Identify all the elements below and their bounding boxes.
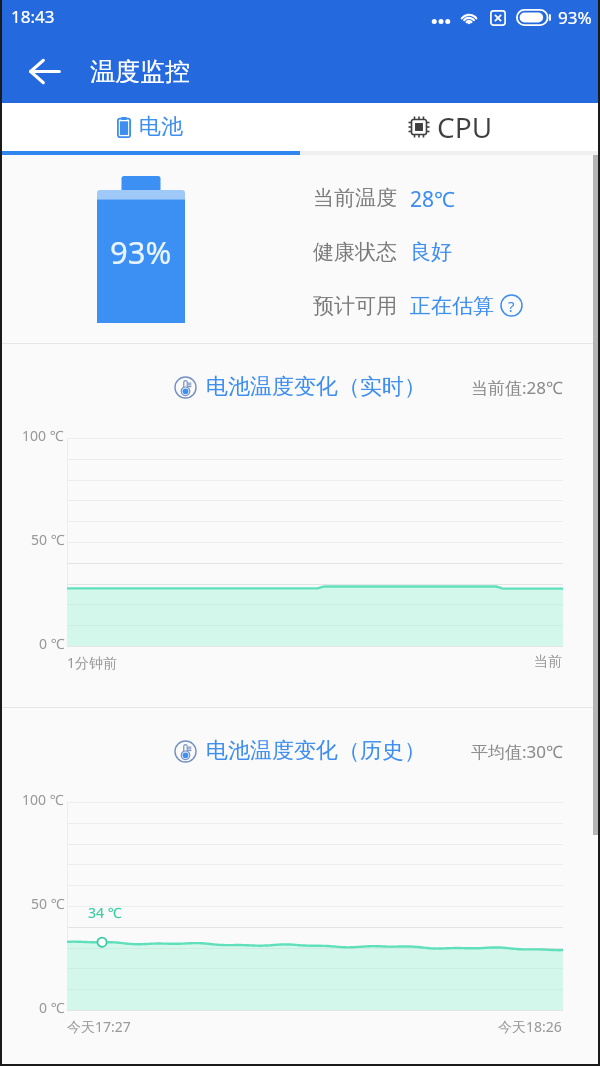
staticText: 1分钟前: [67, 653, 118, 672]
staticText: 预计可用: [313, 293, 397, 317]
staticText: 温度监控: [90, 56, 190, 87]
staticText: 今天17:27: [67, 1017, 131, 1036]
button[interactable]: Back: [0, 40, 90, 103]
staticText: 100 ℃: [22, 426, 64, 445]
button[interactable]: CPU: [300, 103, 600, 151]
staticText: 34 ℃: [88, 903, 122, 922]
staticText: 50 ℃: [31, 530, 65, 549]
staticText: 100 ℃: [22, 790, 64, 809]
staticText: ?: [508, 296, 515, 316]
staticText: 正在估算: [410, 293, 494, 317]
staticText: 0 ℃: [39, 998, 65, 1017]
staticText: 50 ℃: [31, 894, 65, 913]
staticText: 当前温度: [313, 185, 397, 209]
staticText: 93%: [110, 231, 172, 273]
staticText: 良好: [410, 239, 452, 263]
staticText: CPU: [437, 108, 493, 146]
staticText: 18:43: [11, 5, 55, 28]
staticText: 电池温度变化（实时）: [206, 373, 426, 401]
staticText: 健康状态: [313, 239, 397, 263]
staticText: 93%: [558, 6, 592, 29]
staticText: 今天18:26: [498, 1017, 562, 1036]
staticText: 平均值:30℃: [471, 740, 563, 763]
staticText: 电池: [139, 113, 183, 141]
staticText: 电池温度变化（历史）: [206, 737, 426, 765]
staticText: 28℃: [410, 185, 455, 209]
button[interactable]: 电池: [0, 103, 300, 151]
staticText: 当前: [534, 653, 562, 671]
staticText: 当前值:28℃: [471, 376, 563, 399]
button[interactable]: Help: [500, 294, 523, 317]
staticText: 0 ℃: [39, 634, 65, 653]
